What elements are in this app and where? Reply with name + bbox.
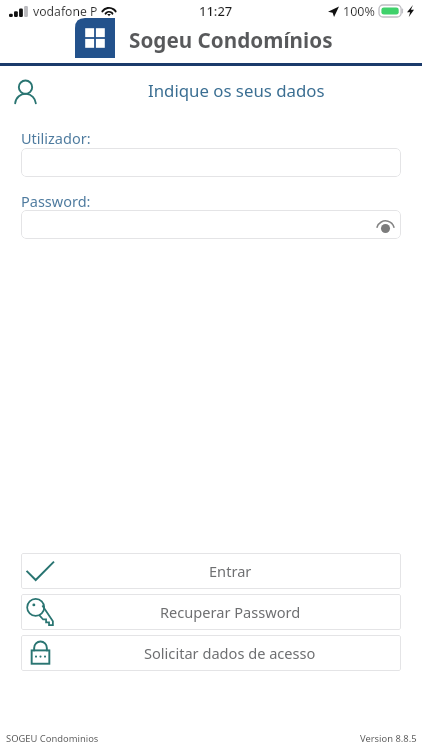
staticText: Indique os seus dados [148, 79, 325, 102]
staticText: Recuperar Password [160, 602, 301, 622]
button[interactable]: Recuperar Password [21, 594, 401, 630]
staticText: SOGEU Condominios [6, 732, 99, 745]
button[interactable]: Solicitar dados de acesso [21, 635, 401, 671]
staticText: Version 8.8.5 [360, 732, 417, 745]
staticText: Solicitar dados de acesso [144, 643, 316, 663]
button[interactable]: Show password [373, 213, 397, 237]
staticText: 100% [343, 3, 375, 20]
staticText: Password: [21, 191, 91, 211]
staticText: vodafone P [33, 3, 98, 20]
button[interactable]: User account [14, 80, 37, 104]
button[interactable]: Entrar [21, 553, 401, 589]
staticText: Entrar [209, 561, 252, 581]
button[interactable] [21, 148, 401, 177]
staticText: Sogeu Condomínios [129, 26, 333, 54]
button[interactable]: Show password [21, 210, 401, 239]
staticText: Utilizador: [21, 128, 91, 148]
staticText: 11:27 [199, 2, 233, 20]
